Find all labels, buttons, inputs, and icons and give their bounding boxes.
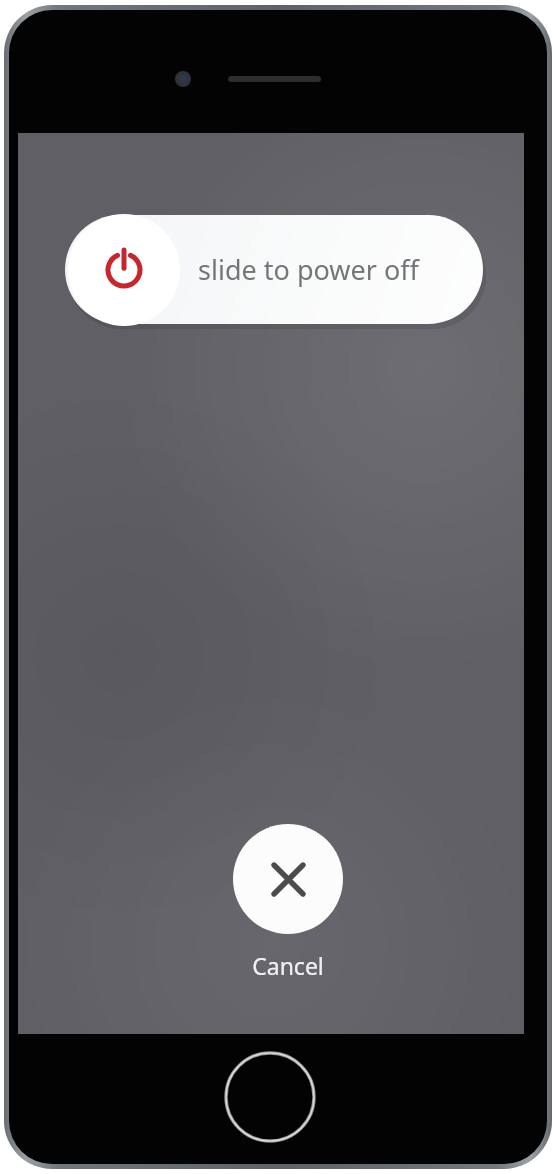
staticText: Cancel <box>228 950 348 982</box>
staticText: slide to power off <box>198 251 419 288</box>
button[interactable]: Home <box>221 1048 319 1146</box>
button[interactable]: Cancel <box>233 824 343 934</box>
button[interactable]: slide to power off <box>65 215 483 324</box>
button[interactable]: Slide to power off <box>68 214 180 326</box>
